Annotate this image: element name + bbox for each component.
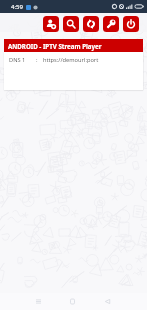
button[interactable]: Recent apps <box>32 295 45 308</box>
button[interactable]: Account <box>43 16 59 32</box>
button[interactable]: Password <box>103 16 119 32</box>
staticText: ANDROID - IPTV Stream Player <box>8 42 102 50</box>
staticText: 4:59 <box>11 3 23 11</box>
staticText: : <box>36 56 38 64</box>
staticText: DNS 1 <box>9 56 26 64</box>
staticText: https://demourl:port <box>43 56 99 64</box>
button[interactable]: Refresh <box>83 16 99 32</box>
button[interactable]: Search <box>63 16 79 32</box>
button[interactable]: Back <box>101 295 114 308</box>
button[interactable]: DNS 1 <box>4 52 143 90</box>
button[interactable]: Power off <box>123 16 139 32</box>
button[interactable]: Home <box>66 295 79 308</box>
button[interactable]: ANDROID - IPTV Stream Player <box>4 39 143 52</box>
